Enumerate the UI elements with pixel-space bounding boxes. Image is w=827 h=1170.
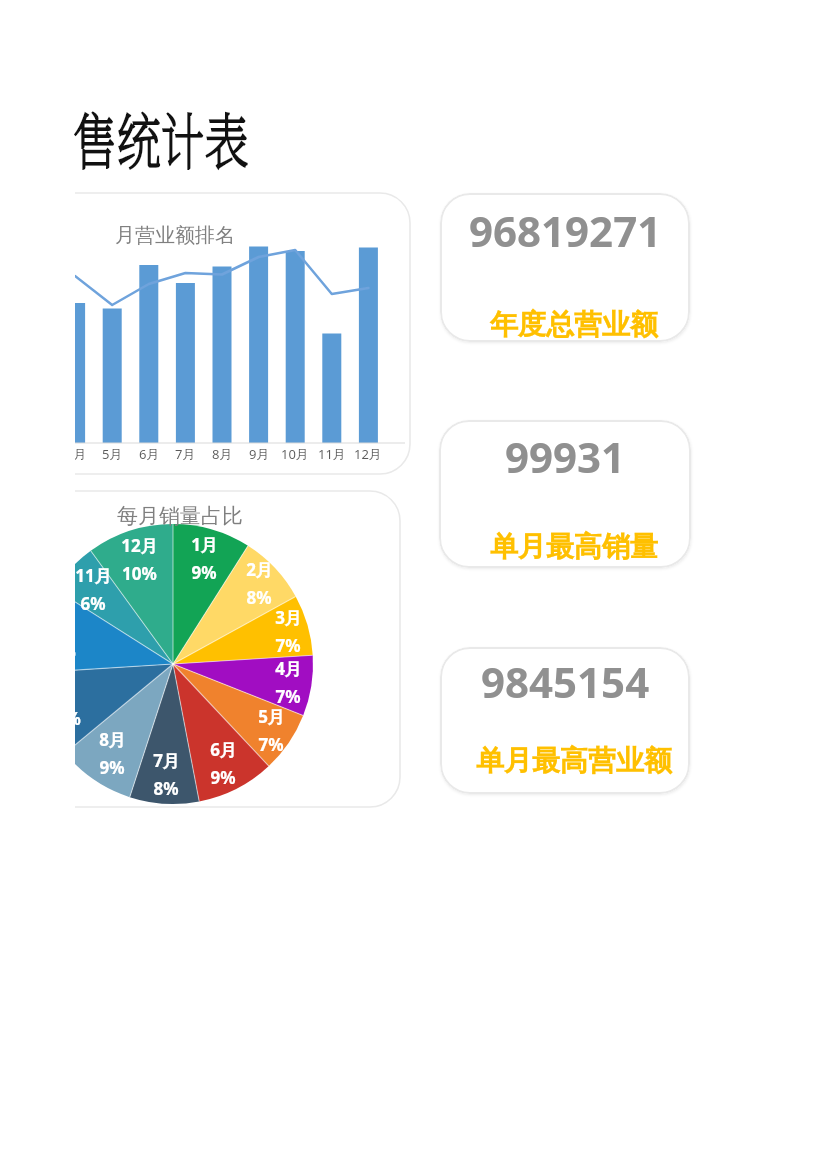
- staticText: 年度总营业额: [490, 307, 658, 342]
- staticText: 8%: [246, 586, 272, 609]
- staticText: 3月: [275, 606, 302, 629]
- staticText: 8月: [212, 445, 233, 463]
- staticText: 4月: [275, 657, 302, 680]
- staticText: 6月: [210, 738, 237, 761]
- staticText: 5月: [102, 445, 123, 463]
- staticText: 12月: [354, 445, 382, 463]
- staticText: 每月销量占比: [117, 503, 243, 529]
- staticText: 2月: [246, 558, 273, 581]
- staticText: 9月: [249, 445, 270, 463]
- staticText: 99931: [505, 428, 626, 485]
- staticText: 9%: [210, 766, 236, 789]
- button[interactable]: [440, 647, 690, 794]
- staticText: 12月: [121, 534, 158, 557]
- staticText: 月营业额排名: [115, 223, 235, 248]
- staticText: 9%: [191, 561, 217, 584]
- staticText: 售统计表: [73, 94, 249, 182]
- staticText: 6月: [139, 445, 160, 463]
- staticText: 4月: [75, 445, 87, 463]
- staticText: 11月: [75, 564, 112, 587]
- staticText: 10%: [75, 707, 81, 730]
- button[interactable]: 每月销量占比: [75, 490, 401, 808]
- staticText: 单月最高营业额: [476, 743, 672, 778]
- button[interactable]: [439, 420, 691, 568]
- staticText: 7月: [153, 749, 180, 772]
- staticText: 9%: [99, 756, 125, 779]
- staticText: 8月: [99, 728, 126, 751]
- staticText: 10%: [122, 562, 157, 585]
- staticText: 7%: [258, 733, 284, 756]
- staticText: 5月: [258, 705, 285, 728]
- staticText: 96819271: [469, 202, 662, 259]
- button[interactable]: [440, 193, 690, 342]
- staticText: 10%: [75, 640, 76, 663]
- staticText: 7%: [275, 634, 301, 657]
- staticText: 11月: [318, 445, 346, 463]
- staticText: 10月: [281, 445, 309, 463]
- staticText: 6%: [80, 592, 106, 615]
- staticText: 1月: [191, 533, 218, 556]
- staticText: 单月最高销量: [490, 529, 658, 564]
- button[interactable]: 月营业额排名: [75, 192, 411, 475]
- staticText: 8%: [153, 777, 179, 800]
- staticText: 7月: [175, 445, 196, 463]
- staticText: 7%: [275, 685, 301, 708]
- staticText: 9845154: [481, 653, 650, 710]
